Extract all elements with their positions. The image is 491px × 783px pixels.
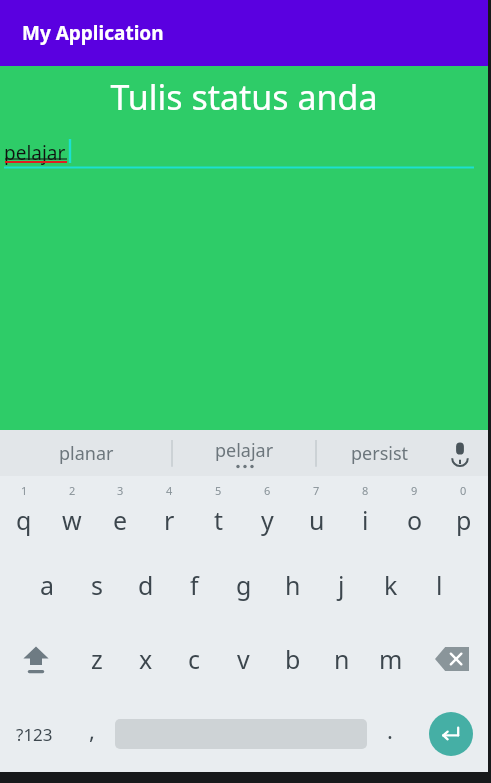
staticText: y xyxy=(261,503,274,537)
button[interactable]: s xyxy=(72,548,121,622)
button[interactable]: 8 xyxy=(341,480,390,548)
button[interactable]: v xyxy=(219,622,268,696)
staticText: u xyxy=(309,503,325,537)
button[interactable]: n xyxy=(317,622,366,696)
staticText: planar xyxy=(59,441,114,466)
button[interactable]: . xyxy=(367,696,413,772)
button[interactable]: My Application xyxy=(0,0,488,66)
staticText: w xyxy=(62,503,82,537)
staticText: i xyxy=(362,503,369,537)
staticText: My Application xyxy=(22,20,164,46)
staticText: ?123 xyxy=(16,723,53,746)
staticText: b xyxy=(285,642,301,676)
staticText: l xyxy=(436,568,443,602)
button[interactable]: d xyxy=(121,548,170,622)
staticText: q xyxy=(16,503,32,537)
button[interactable]: pelajar xyxy=(4,138,474,168)
button[interactable]: g xyxy=(219,548,268,622)
staticText: 3 xyxy=(117,483,124,498)
staticText: . xyxy=(387,715,393,745)
staticText: r xyxy=(164,503,175,537)
staticText: e xyxy=(113,503,128,537)
staticText: m xyxy=(379,642,403,676)
staticText: k xyxy=(384,568,398,602)
button[interactable]: planar xyxy=(0,430,172,476)
button[interactable]: 1 xyxy=(0,480,48,548)
staticText: n xyxy=(334,642,350,676)
button[interactable]: Backspace xyxy=(415,622,488,696)
staticText: persist xyxy=(351,441,409,466)
staticText: p xyxy=(456,503,472,537)
button[interactable]: 7 xyxy=(292,480,341,548)
button[interactable]: z xyxy=(72,622,121,696)
button[interactable]: f xyxy=(170,548,219,622)
button[interactable]: Enter xyxy=(413,696,488,772)
button[interactable]: k xyxy=(366,548,415,622)
staticText: , xyxy=(89,715,95,745)
button[interactable]: Voice input xyxy=(442,435,478,471)
staticText: 5 xyxy=(215,483,222,498)
staticText: pelajar xyxy=(4,140,66,166)
button[interactable]: pelajar xyxy=(172,430,316,476)
button[interactable]: 5 xyxy=(194,480,243,548)
button[interactable]: x xyxy=(121,622,170,696)
button[interactable]: persist xyxy=(316,430,444,476)
button[interactable]: j xyxy=(317,548,366,622)
button[interactable]: m xyxy=(366,622,415,696)
staticText: 6 xyxy=(264,483,271,498)
staticText: 8 xyxy=(362,483,369,498)
staticText: 0 xyxy=(460,483,467,498)
staticText: d xyxy=(138,568,154,602)
staticText: 7 xyxy=(313,483,320,498)
button[interactable]: 6 xyxy=(243,480,292,548)
staticText: c xyxy=(188,642,201,676)
staticText: j xyxy=(338,568,345,602)
button[interactable]: 9 xyxy=(390,480,439,548)
button[interactable]: c xyxy=(170,622,219,696)
staticText: pelajar xyxy=(215,438,274,463)
button[interactable]: , xyxy=(69,696,115,772)
staticText: 2 xyxy=(69,483,76,498)
staticText: h xyxy=(285,568,301,602)
staticText: v xyxy=(237,642,250,676)
button[interactable]: a xyxy=(23,548,72,622)
staticText: Tulis status anda xyxy=(0,74,488,120)
button[interactable]: Space xyxy=(115,696,367,772)
staticText: s xyxy=(91,568,103,602)
button[interactable]: 2 xyxy=(48,480,96,548)
staticText: g xyxy=(236,568,252,602)
button[interactable]: ?123 xyxy=(0,696,69,772)
button[interactable]: 4 xyxy=(145,480,194,548)
button[interactable]: Shift xyxy=(0,622,72,696)
staticText: z xyxy=(91,642,103,676)
staticText: a xyxy=(40,568,55,602)
button[interactable]: 0 xyxy=(439,480,488,548)
staticText: 4 xyxy=(166,483,173,498)
button[interactable]: l xyxy=(415,548,464,622)
button[interactable]: 3 xyxy=(96,480,145,548)
staticText: t xyxy=(214,503,224,537)
staticText: o xyxy=(407,503,423,537)
staticText: 1 xyxy=(21,483,28,498)
staticText: x xyxy=(139,642,153,676)
staticText: 9 xyxy=(411,483,418,498)
button[interactable]: b xyxy=(268,622,317,696)
button[interactable]: h xyxy=(268,548,317,622)
staticText: f xyxy=(190,568,199,602)
